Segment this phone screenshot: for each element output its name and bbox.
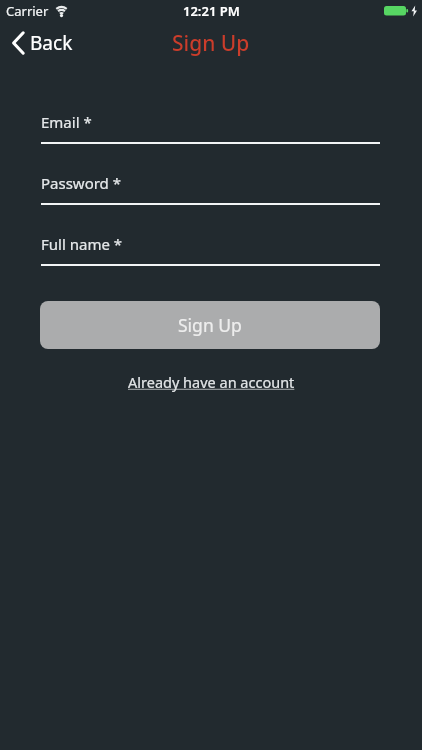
- staticText: Password *: [41, 173, 122, 193]
- staticText: Sign Up: [172, 29, 250, 58]
- button[interactable]: Back: [11, 28, 73, 58]
- button[interactable]: Already have an account: [128, 372, 295, 392]
- button[interactable]: Full name *: [41, 229, 380, 266]
- button[interactable]: Sign Up: [40, 301, 380, 349]
- button[interactable]: Email *: [41, 107, 380, 144]
- staticText: 12:21 PM: [183, 2, 240, 20]
- staticText: Email *: [41, 112, 92, 132]
- staticText: Carrier: [6, 2, 49, 20]
- button[interactable]: Password *: [41, 168, 380, 205]
- staticText: Full name *: [41, 234, 123, 254]
- staticText: Sign Up: [178, 313, 242, 337]
- staticText: Back: [30, 30, 73, 56]
